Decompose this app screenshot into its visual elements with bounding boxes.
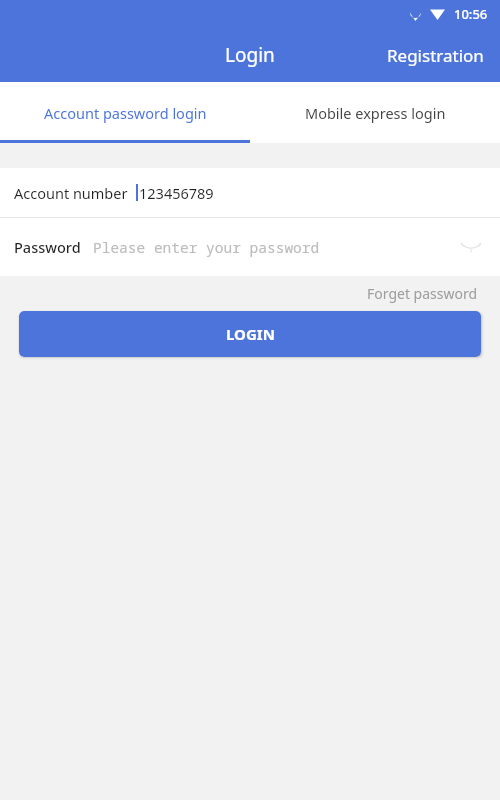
- button[interactable]: Account number: [0, 168, 500, 217]
- button[interactable]: LOGIN: [19, 311, 481, 357]
- staticText: Forget password: [367, 284, 478, 303]
- button[interactable]: Account password login: [0, 82, 250, 143]
- staticText: Account number: [14, 183, 128, 203]
- button[interactable]: Login: [211, 36, 289, 74]
- button[interactable]: Registration: [371, 38, 500, 73]
- staticText: Please enter your password: [93, 237, 320, 257]
- staticText: 123456789: [139, 183, 214, 203]
- staticText: Mobile express login: [305, 103, 446, 123]
- staticText: Login: [225, 42, 275, 68]
- staticText: Account password login: [44, 103, 207, 123]
- button[interactable]: Password: [0, 218, 500, 276]
- button[interactable]: Mobile express login: [250, 82, 500, 143]
- other: Wi-Fi: [430, 8, 445, 20]
- staticText: Password: [14, 237, 81, 257]
- staticText: LOGIN: [226, 324, 275, 344]
- button[interactable]: Forget password: [345, 280, 500, 307]
- button[interactable]: Show password: [456, 232, 486, 262]
- other: Location: [410, 7, 421, 21]
- staticText: Registration: [387, 44, 484, 67]
- staticText: 10:56: [454, 5, 488, 23]
